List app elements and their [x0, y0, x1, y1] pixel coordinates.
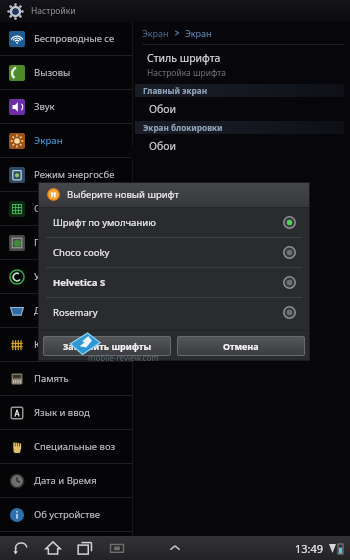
- staticText: Шрифт по умолчанию: [53, 216, 283, 229]
- button[interactable]: Память: [0, 362, 133, 396]
- button[interactable]: Вызовы: [0, 56, 133, 90]
- button[interactable]: Обои: [133, 97, 350, 121]
- button[interactable]: Choco cooky: [38, 238, 310, 267]
- staticText: Стиль шрифта: [147, 51, 221, 65]
- button[interactable]: Беспроводные се: [0, 22, 133, 56]
- staticText: 13:49: [295, 541, 324, 556]
- staticText: Настройки: [31, 5, 76, 17]
- staticText: Беспроводные се: [34, 32, 115, 45]
- staticText: Экран блокировки: [143, 122, 223, 133]
- staticText: Экран: [185, 27, 212, 39]
- button[interactable]: Пр: [0, 226, 133, 260]
- button[interactable]: Дв: [0, 294, 133, 328]
- button[interactable]: Recents: [76, 539, 94, 557]
- button[interactable]: Ко: [0, 328, 133, 362]
- button[interactable]: Шрифт по умолчанию: [38, 208, 310, 237]
- button[interactable]: 13:49: [295, 541, 343, 556]
- staticText: Ко: [34, 338, 46, 351]
- staticText: mobile-review.com: [88, 352, 159, 363]
- button[interactable]: Режим энергосбе: [0, 158, 133, 192]
- staticText: Режим энергосбе: [34, 168, 115, 181]
- button[interactable]: Дата и Время: [0, 464, 133, 498]
- staticText: Обои: [149, 102, 177, 116]
- staticText: Экран: [34, 134, 63, 147]
- button[interactable]: GPS: [0, 192, 133, 226]
- button[interactable]: Стиль шрифта: [133, 45, 350, 84]
- staticText: Загрузить шрифты: [63, 340, 152, 352]
- button[interactable]: Back: [12, 539, 30, 557]
- staticText: Об устройстве: [34, 508, 101, 521]
- staticText: Настройка шрифта: [147, 67, 226, 79]
- staticText: Язык и ввод: [34, 406, 90, 419]
- staticText: Экран: [142, 27, 169, 39]
- staticText: Пр: [34, 236, 47, 249]
- staticText: Память: [34, 372, 69, 385]
- button[interactable]: Звук: [0, 90, 133, 124]
- button[interactable]: Rosemary: [38, 298, 310, 327]
- button[interactable]: Об устройстве: [0, 498, 133, 532]
- button[interactable]: Отмена: [177, 336, 305, 356]
- staticText: Главный экран: [143, 85, 208, 96]
- staticText: Обои: [149, 139, 177, 153]
- staticText: Звук: [34, 100, 55, 113]
- staticText: Rosemary: [53, 306, 283, 319]
- staticText: Специальные воз: [34, 440, 116, 453]
- staticText: GPS: [34, 202, 52, 215]
- staticText: Choco cooky: [53, 246, 283, 259]
- button[interactable]: Screenshot: [108, 539, 126, 557]
- button[interactable]: Экран: [0, 124, 133, 158]
- button[interactable]: Expand: [166, 539, 184, 557]
- button[interactable]: Уч: [0, 260, 133, 294]
- button[interactable]: Язык и ввод: [0, 396, 133, 430]
- staticText: Вызовы: [34, 66, 71, 79]
- button[interactable]: Home: [44, 539, 62, 557]
- button[interactable]: Специальные воз: [0, 430, 133, 464]
- staticText: Helvetica S: [53, 276, 283, 289]
- staticText: Отмена: [223, 340, 259, 352]
- staticText: Дата и Время: [34, 474, 97, 487]
- staticText: Уч: [34, 270, 46, 283]
- button[interactable]: Обои: [133, 134, 350, 158]
- staticText: Дв: [34, 304, 47, 317]
- button[interactable]: Helvetica S: [38, 268, 310, 297]
- button[interactable]: Загрузить шрифты: [43, 336, 171, 356]
- staticText: Выберите новый шрифт: [67, 188, 179, 201]
